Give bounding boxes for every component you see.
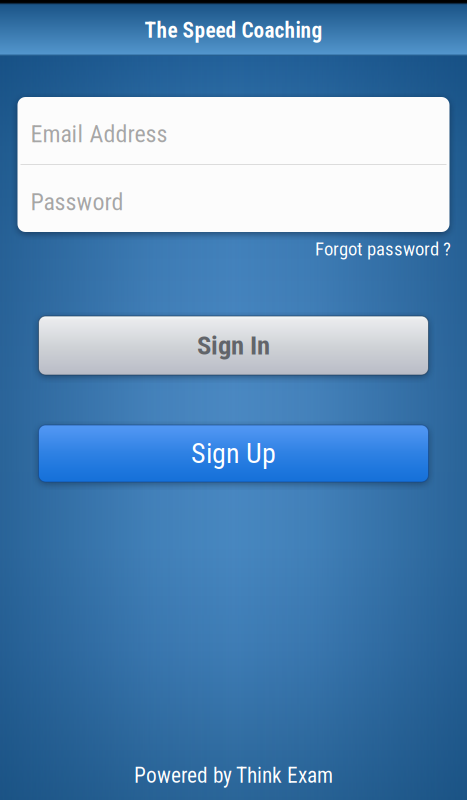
- staticText: Forgot password ?: [315, 238, 451, 260]
- button[interactable]: Sign In: [38, 316, 428, 375]
- button[interactable]: Sign Up: [38, 425, 428, 482]
- staticText: Powered by Think Exam: [134, 763, 333, 788]
- staticText: Sign Up: [191, 437, 276, 470]
- staticText: Password: [30, 188, 123, 216]
- staticText: Sign In: [197, 330, 270, 361]
- staticText: The Speed Coaching: [144, 18, 322, 43]
- staticText: Email Address: [30, 120, 167, 148]
- button[interactable]: Forgot password ?: [16, 232, 451, 264]
